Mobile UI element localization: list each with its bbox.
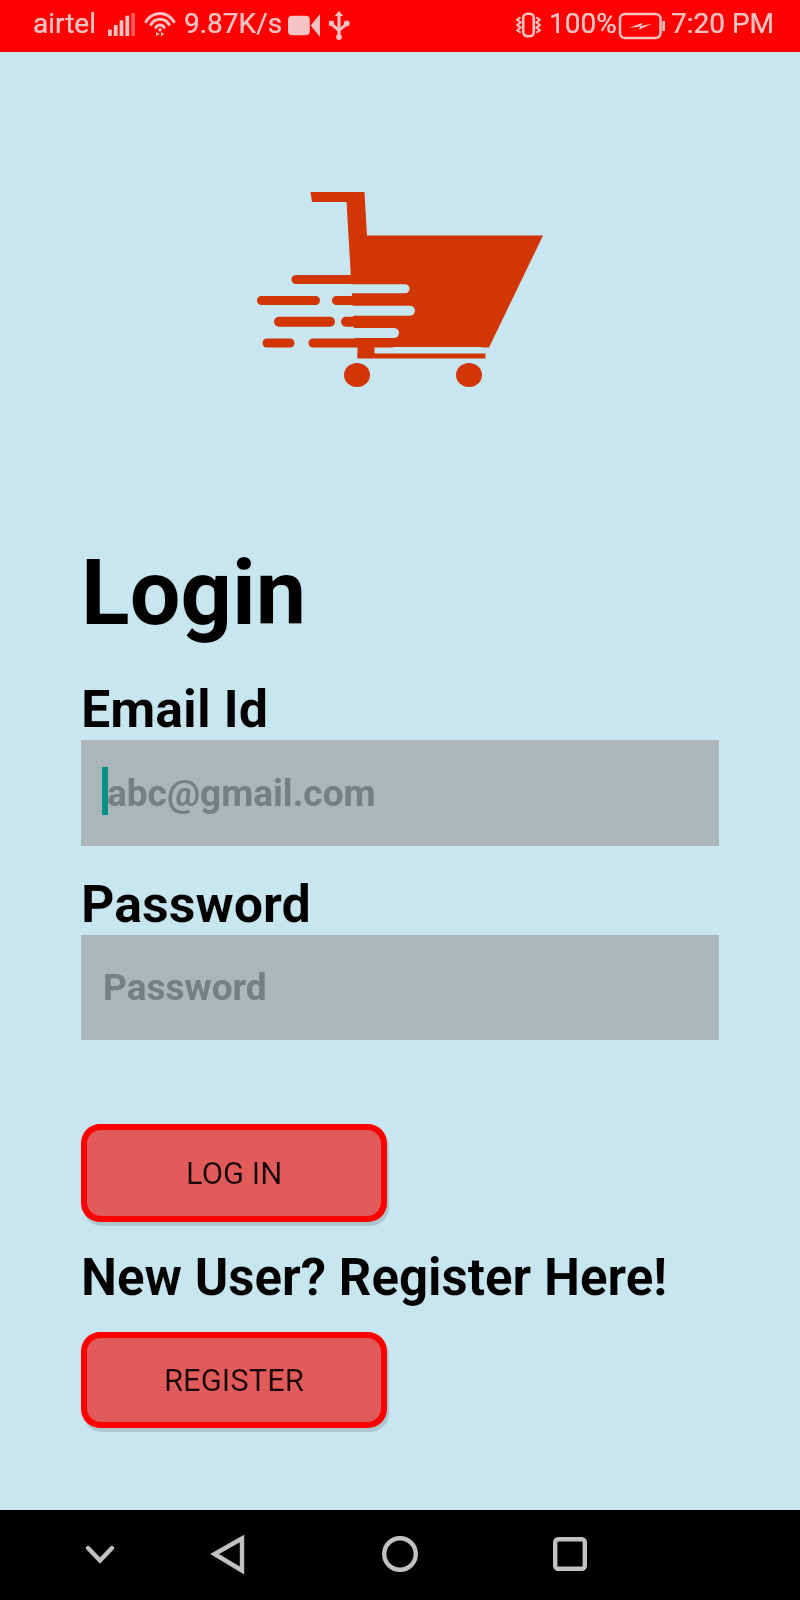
staticText: abc@gmail.com xyxy=(107,772,376,815)
staticText: Email Id xyxy=(81,679,269,740)
staticText: 100% xyxy=(549,7,617,40)
staticText: New User? Register Here! xyxy=(81,1248,668,1308)
staticText: 9.87K/s xyxy=(184,7,283,40)
staticText: REGISTER xyxy=(164,1362,304,1398)
button[interactable]: Home xyxy=(365,1519,435,1589)
button[interactable]: abc@gmail.com xyxy=(81,740,719,846)
staticText: LOG IN xyxy=(186,1155,283,1191)
button[interactable]: REGISTER xyxy=(87,1338,381,1422)
button[interactable]: Password xyxy=(81,935,719,1040)
button[interactable]: Recent apps xyxy=(535,1519,605,1589)
button[interactable]: Hide keyboard xyxy=(65,1519,135,1589)
staticText: Login xyxy=(81,541,307,646)
button[interactable]: Back xyxy=(194,1519,264,1589)
button[interactable]: LOG IN xyxy=(87,1130,381,1216)
staticText: 7:20 PM xyxy=(671,7,775,40)
staticText: airtel xyxy=(33,7,97,40)
staticText: Password xyxy=(81,874,311,935)
staticText: Password xyxy=(103,966,267,1009)
